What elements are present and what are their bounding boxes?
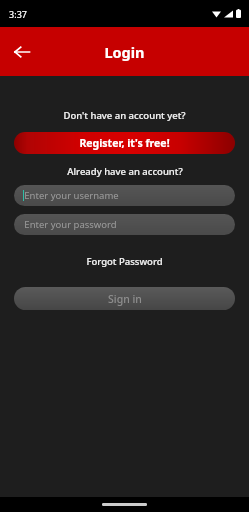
button[interactable]: Back bbox=[5, 35, 39, 69]
button[interactable]: Register, it's free! bbox=[14, 132, 235, 154]
staticText: Sign in bbox=[108, 292, 142, 306]
staticText: Already have an account? bbox=[67, 165, 183, 178]
button[interactable]: Forgot Password bbox=[80, 252, 169, 271]
staticText: Forgot Password bbox=[86, 255, 163, 268]
staticText: Login bbox=[104, 42, 145, 62]
staticText: Don't have an account yet? bbox=[63, 109, 186, 122]
button[interactable]: Enter your password bbox=[14, 214, 235, 235]
staticText: Enter your username bbox=[24, 189, 119, 202]
staticText: Register, it's free! bbox=[79, 136, 170, 150]
button[interactable]: Sign in bbox=[14, 287, 235, 310]
button[interactable]: Enter your username bbox=[14, 185, 235, 206]
staticText: Enter your password bbox=[24, 218, 117, 231]
staticText: 3:37 bbox=[9, 8, 27, 20]
